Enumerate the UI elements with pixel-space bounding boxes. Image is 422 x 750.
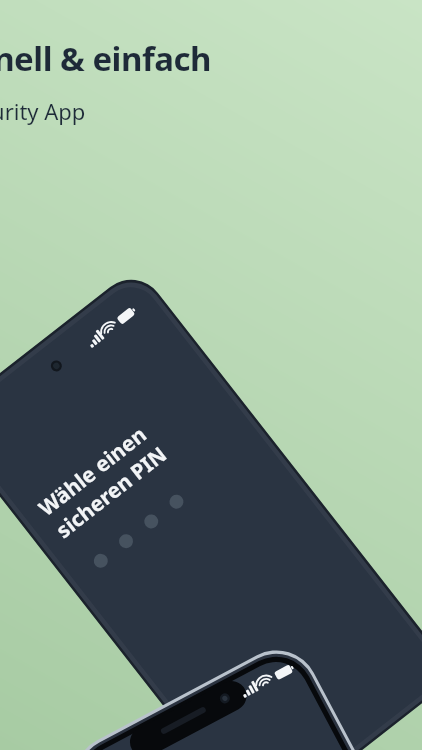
button[interactable]: Onboarding illustration — [0, 0, 422, 750]
